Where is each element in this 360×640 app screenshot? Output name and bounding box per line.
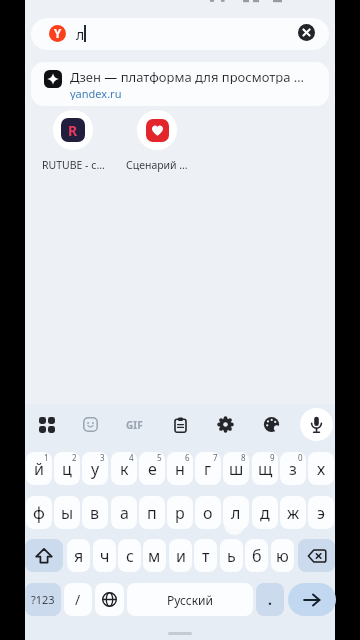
staticText: я [74, 545, 84, 567]
staticText: л [76, 25, 85, 43]
staticText: . [268, 590, 272, 609]
button[interactable] [217, 416, 234, 433]
button[interactable] [39, 417, 55, 433]
button[interactable]: о [195, 496, 221, 529]
button[interactable]: GIF [123, 417, 145, 432]
button[interactable] [288, 583, 336, 616]
button[interactable] [31, 18, 329, 50]
staticText: о [203, 502, 213, 524]
button[interactable] [174, 417, 187, 433]
staticText: ы [61, 502, 74, 524]
staticText: а [120, 502, 129, 524]
button[interactable]: у [82, 452, 108, 485]
button[interactable]: щ [252, 452, 278, 485]
staticText: б [252, 545, 262, 567]
staticText: 9 [270, 452, 275, 463]
button[interactable]: м [143, 539, 166, 572]
staticText: ж [287, 502, 300, 524]
button[interactable]: н [167, 452, 193, 485]
button[interactable]: и [169, 539, 192, 572]
button[interactable] [95, 583, 124, 616]
staticText: 1 [44, 452, 49, 463]
button[interactable]: п [139, 496, 165, 529]
button[interactable]: л [223, 496, 249, 529]
staticText: г [204, 458, 212, 480]
button[interactable]: к [111, 452, 137, 485]
button[interactable] [137, 110, 177, 150]
button[interactable]: э [308, 496, 334, 529]
staticText: 8 [241, 452, 246, 463]
button[interactable]: ш [223, 452, 249, 485]
staticText: с [126, 545, 134, 567]
staticText: з [289, 458, 297, 480]
staticText: ч [100, 545, 110, 567]
button[interactable]: ь [220, 539, 243, 572]
staticText: 5 [157, 452, 162, 463]
staticText: 6 [185, 452, 190, 463]
staticText: yandex.ru [70, 86, 122, 100]
button[interactable] [25, 539, 63, 572]
staticText: р [175, 502, 185, 524]
staticText: ?123 [31, 592, 55, 607]
button[interactable]: й [26, 452, 52, 485]
staticText: ф [33, 502, 45, 524]
staticText: п [147, 502, 157, 524]
staticText: R [68, 121, 78, 140]
staticText: д [260, 502, 270, 524]
button[interactable]: ф [26, 496, 52, 529]
button[interactable] [31, 62, 329, 106]
staticText: ь [227, 545, 236, 567]
button[interactable]: R [53, 110, 93, 150]
staticText: / [75, 590, 81, 609]
staticText: е [148, 458, 157, 480]
button[interactable]: Русский [127, 583, 253, 616]
staticText: RUTUBE - с… [42, 158, 105, 172]
staticText: х [317, 458, 326, 480]
button[interactable]: . [256, 583, 284, 616]
staticText: ш [229, 458, 244, 480]
button[interactable]: з [280, 452, 306, 485]
button[interactable] [298, 539, 335, 572]
staticText: 3 [100, 452, 105, 463]
staticText: й [34, 458, 44, 480]
button[interactable]: я [67, 539, 90, 572]
button[interactable]: е [139, 452, 165, 485]
button[interactable]: д [252, 496, 278, 529]
button[interactable] [83, 417, 98, 432]
staticText: Сценарий … [126, 158, 188, 172]
button[interactable]: г [195, 452, 221, 485]
staticText: к [120, 458, 129, 480]
staticText: 0 [298, 452, 303, 463]
button[interactable]: х [308, 452, 334, 485]
button[interactable]: ы [54, 496, 80, 529]
staticText: ю [276, 545, 289, 567]
staticText: 4 [129, 452, 134, 463]
staticText: э [317, 502, 325, 524]
staticText: м [148, 545, 161, 567]
staticText: в [90, 502, 100, 524]
staticText: GIF [126, 418, 143, 432]
staticText: Y [54, 26, 62, 42]
button[interactable]: с [118, 539, 141, 572]
button[interactable]: ж [280, 496, 306, 529]
button[interactable]: в [82, 496, 108, 529]
button[interactable] [300, 408, 333, 441]
button[interactable]: р [167, 496, 193, 529]
button[interactable]: а [111, 496, 137, 529]
button[interactable]: ю [271, 539, 294, 572]
button[interactable] [298, 24, 315, 41]
staticText: т [202, 545, 210, 567]
staticText: Русский [167, 592, 213, 608]
button[interactable]: б [245, 539, 268, 572]
button[interactable]: / [64, 583, 92, 616]
button[interactable]: ?123 [25, 583, 61, 616]
staticText: и [176, 545, 186, 567]
button[interactable] [263, 416, 280, 433]
staticText: н [175, 458, 185, 480]
staticText: у [91, 458, 100, 480]
staticText: 7 [213, 452, 218, 463]
button[interactable]: ц [54, 452, 80, 485]
staticText: Дзен — платформа для просмотра … [70, 68, 305, 84]
button[interactable]: ч [93, 539, 116, 572]
button[interactable]: т [194, 539, 217, 572]
